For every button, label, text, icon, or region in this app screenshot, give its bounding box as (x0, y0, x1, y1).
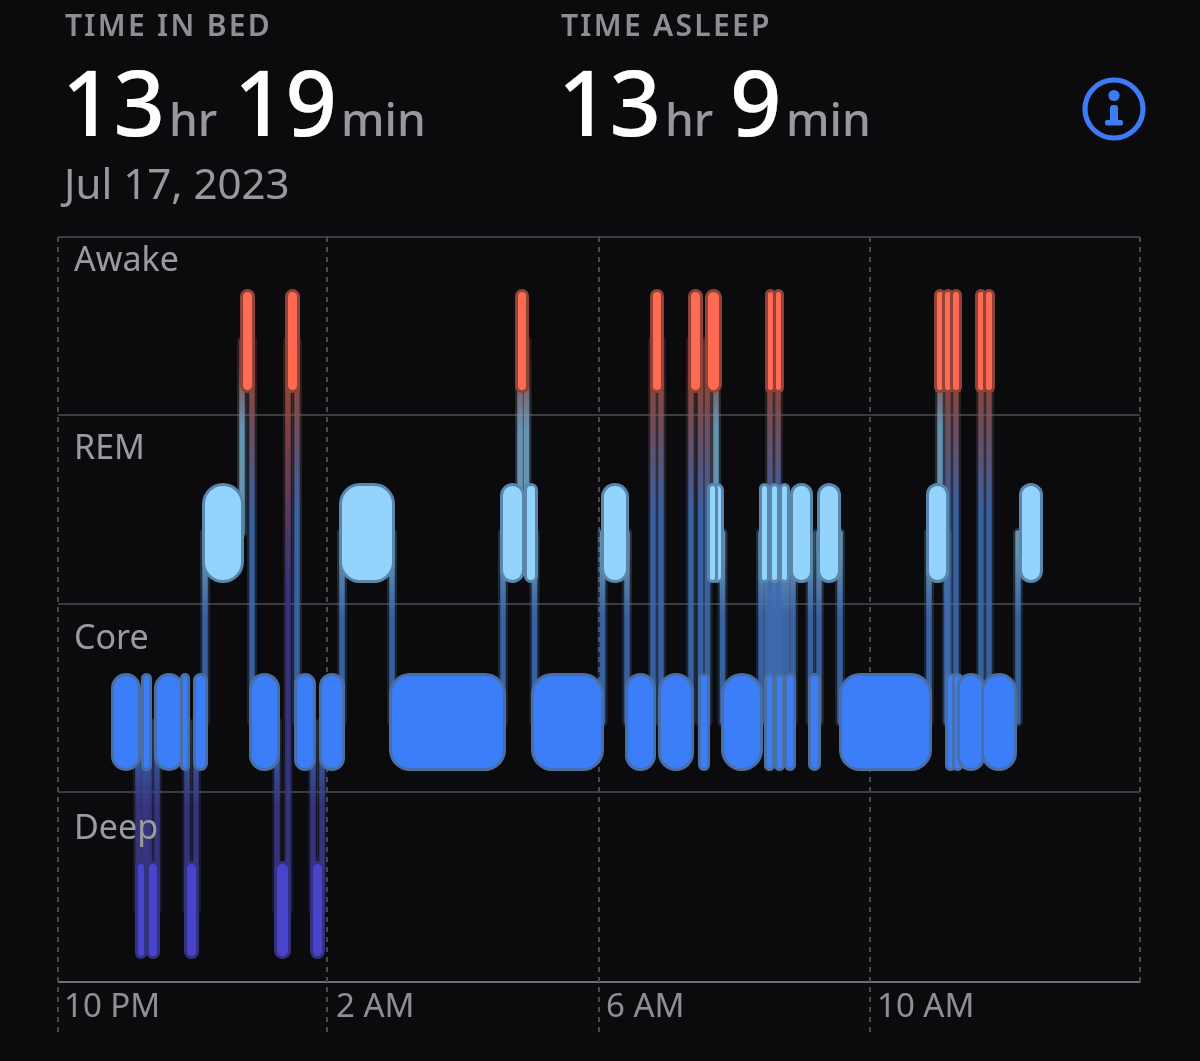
staticText: 19 (234, 40, 337, 163)
staticText: 10 PM (64, 982, 161, 1027)
staticText: 13 (62, 40, 165, 163)
staticText: REM (74, 423, 145, 469)
button[interactable] (1081, 76, 1147, 142)
staticText: 6 AM (606, 982, 685, 1027)
staticText: min (341, 87, 426, 150)
staticText: TIME IN BED (65, 4, 273, 45)
staticText: hr (169, 87, 218, 150)
staticText: Deep (74, 803, 159, 849)
staticText: 2 AM (336, 982, 415, 1027)
staticText: Core (74, 613, 149, 659)
staticText: 13 (558, 40, 661, 163)
staticText: Awake (74, 235, 179, 281)
staticText: hr (665, 87, 714, 150)
staticText: 9 (730, 40, 782, 163)
staticText: 10 AM (877, 982, 975, 1027)
staticText: min (786, 87, 871, 150)
staticText: TIME ASLEEP (561, 4, 772, 45)
staticText: Jul 17, 2023 (64, 154, 290, 211)
